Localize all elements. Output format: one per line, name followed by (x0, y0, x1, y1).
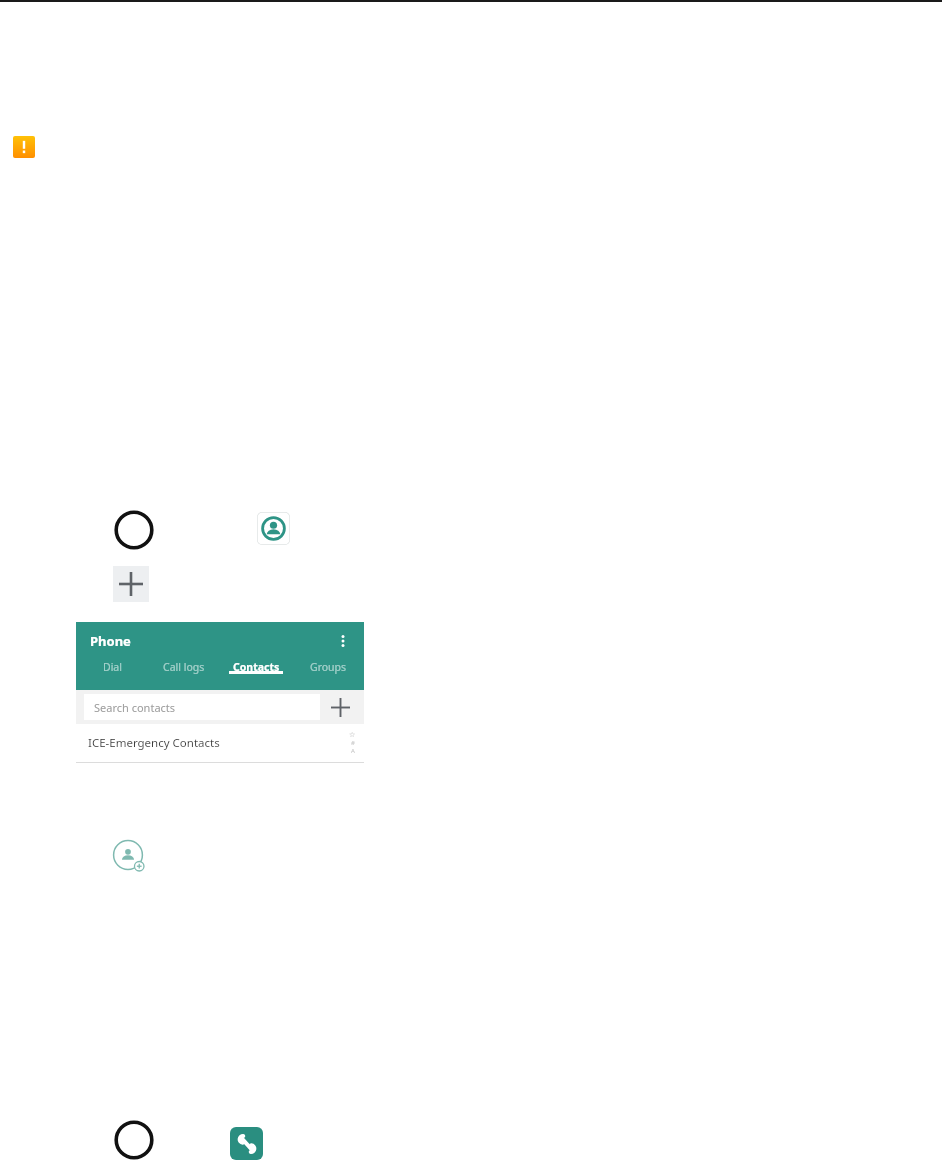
staticText: # (351, 739, 355, 747)
button[interactable]: Add (113, 566, 149, 602)
button[interactable]: Contacts app icon (257, 512, 290, 545)
button[interactable]: More options (332, 630, 354, 652)
button[interactable]: Dial (76, 660, 148, 674)
staticText: Contacts (233, 660, 280, 674)
staticText: ICE-Emergency Contacts (88, 735, 220, 751)
staticText: Groups (310, 660, 347, 674)
button[interactable]: Call logs (148, 660, 220, 674)
button[interactable]: ICE-Emergency Contacts (76, 724, 364, 762)
button[interactable]: Search contacts (84, 694, 320, 720)
button[interactable]: Warning (13, 136, 35, 158)
staticText: Phone (90, 632, 131, 650)
button[interactable]: Add contact (320, 694, 360, 720)
staticText: A (351, 747, 355, 755)
staticText: Dial (103, 660, 122, 674)
staticText: ☆ (349, 731, 356, 739)
button[interactable]: Add new contact (110, 837, 150, 877)
staticText: Call logs (163, 660, 205, 674)
button[interactable]: Groups (292, 660, 364, 674)
button[interactable]: Phone app icon (230, 1127, 263, 1160)
button[interactable]: Bullet (112, 508, 156, 552)
button[interactable]: Contacts (220, 660, 292, 674)
staticText: Search contacts (94, 700, 176, 715)
button[interactable]: Bullet (112, 1118, 156, 1160)
